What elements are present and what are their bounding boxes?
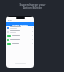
staticText: Action Button: [23, 6, 42, 10]
button[interactable]: [7, 30, 33, 33]
button[interactable]: Action Button: [6, 22, 34, 26]
button[interactable]: [7, 34, 33, 37]
button[interactable]: [7, 42, 33, 45]
staticText: Supercharge your: [19, 3, 46, 7]
staticText: Action Button: [12, 23, 28, 26]
button[interactable]: [7, 26, 33, 29]
button[interactable]: [7, 38, 33, 41]
staticText: 9:41: [8, 19, 13, 22]
